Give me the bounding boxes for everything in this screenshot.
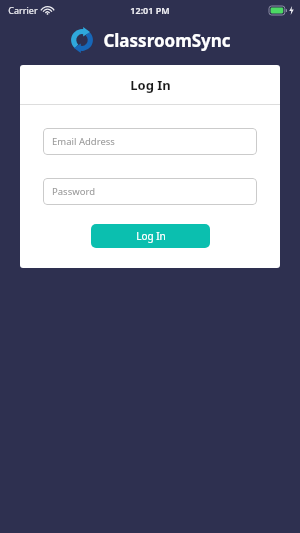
staticText: Log In [136,229,166,243]
button[interactable]: Email Address [43,128,257,155]
button[interactable]: Password [43,178,257,205]
button[interactable]: Log In [91,224,210,248]
staticText: Carrier [8,4,38,16]
staticText: Email Address [52,135,115,148]
staticText: ClassroomSync [103,29,231,52]
staticText: 12:01 PM [130,4,170,16]
staticText: Log In [130,76,171,94]
staticText: Password [52,185,95,198]
